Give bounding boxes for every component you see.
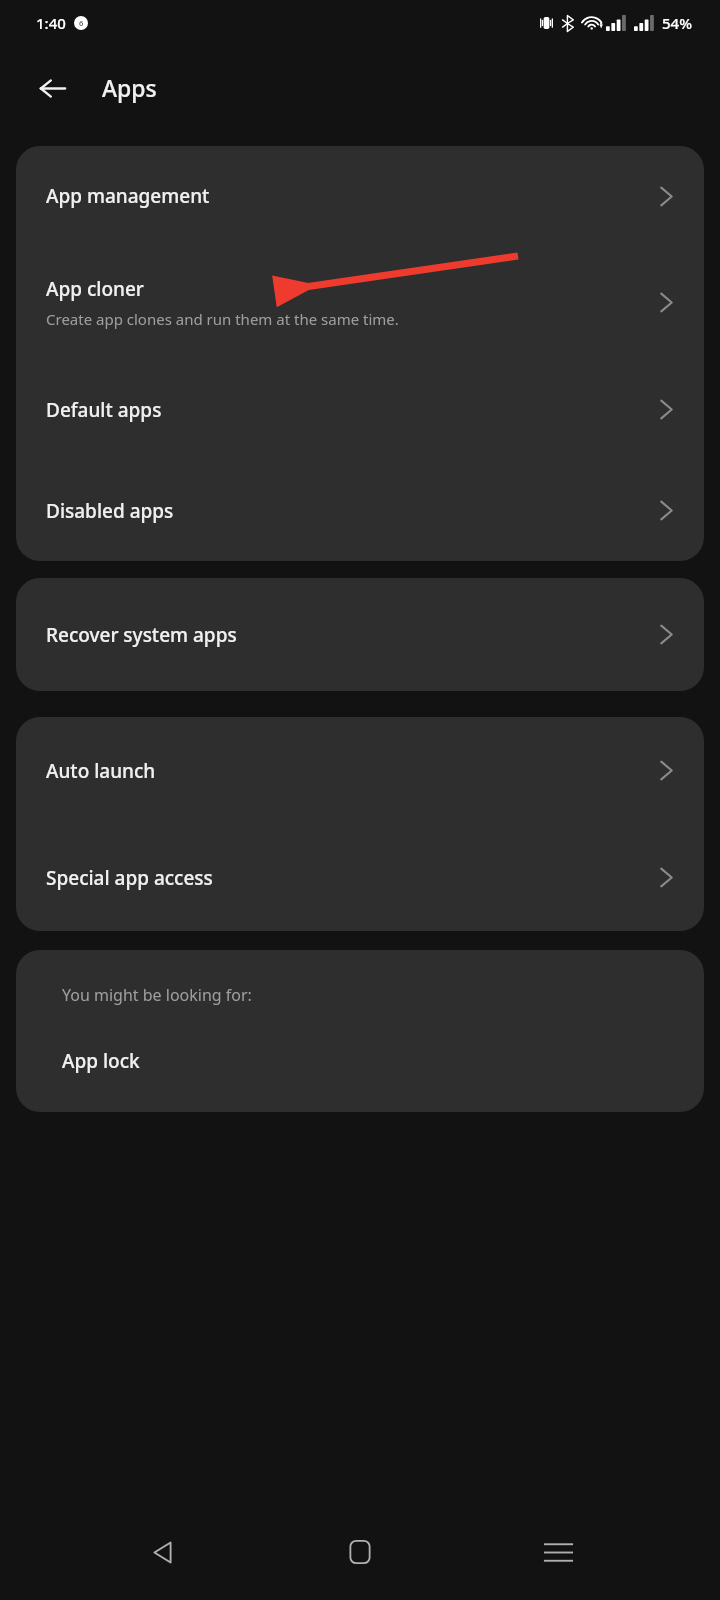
staticText: Special app access [46,865,213,891]
button[interactable]: Auto launch [16,717,704,824]
staticText: Apps [102,72,157,103]
button[interactable]: Disabled apps [16,460,704,561]
staticText: 54% [662,13,692,33]
button[interactable]: Recover system apps [16,578,704,691]
staticText: Recover system apps [46,622,237,648]
staticText: Create app clones and run them at the sa… [46,309,399,329]
button[interactable]: Back [26,62,78,114]
button[interactable]: Home [324,1516,396,1588]
button[interactable]: App management [16,146,704,246]
button[interactable]: App lock [16,1034,704,1088]
button[interactable]: Recent apps [522,1516,594,1588]
staticText: 6 [79,18,84,28]
button[interactable]: Default apps [16,359,704,460]
staticText: Default apps [46,397,162,423]
button[interactable]: Back [126,1516,198,1588]
staticText: App cloner [46,276,144,302]
staticText: Disabled apps [46,498,174,524]
staticText: App management [46,183,210,209]
staticText: App lock [62,1048,140,1074]
button[interactable]: App cloner [16,246,704,359]
staticText: Auto launch [46,758,156,784]
staticText: 1:40 [36,13,66,33]
button[interactable]: Special app access [16,824,704,931]
staticText: You might be looking for: [62,984,252,1006]
